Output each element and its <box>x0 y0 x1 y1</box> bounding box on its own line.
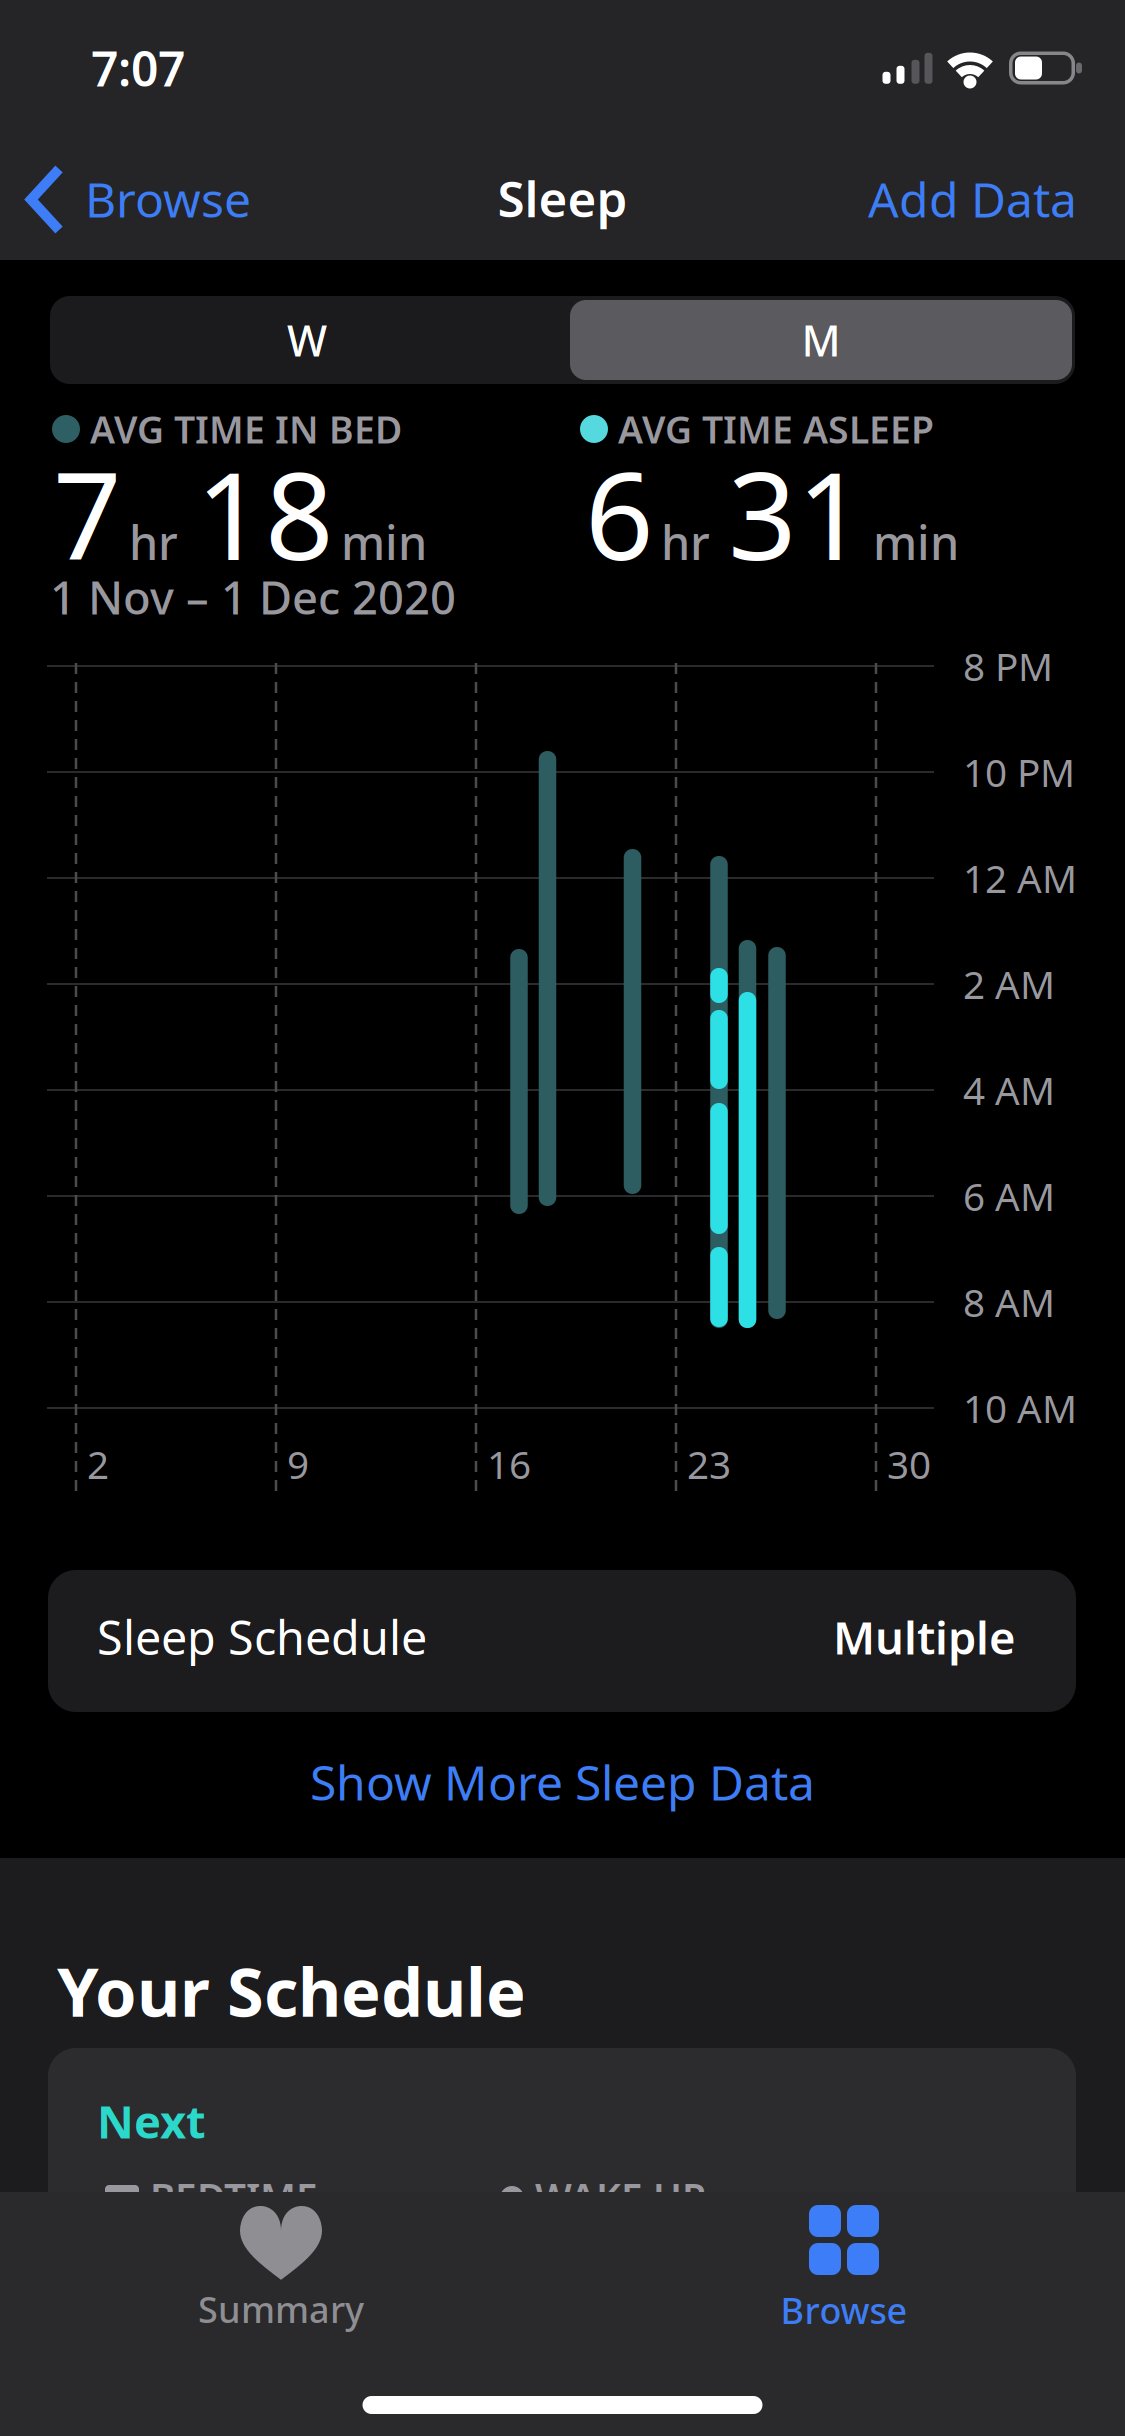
staticText: 4 AM <box>963 1064 1055 1116</box>
staticText: Show More Sleep Data <box>310 1750 815 1814</box>
staticText: hr <box>129 511 178 573</box>
staticText: Next <box>97 2091 206 2151</box>
button[interactable]: Show More Sleep Data <box>112 1727 1012 1837</box>
button[interactable]: M <box>562 296 1074 384</box>
staticText: AVG TIME IN BED <box>90 404 402 454</box>
staticText: 7 <box>53 434 122 593</box>
staticText: 12 AM <box>963 852 1077 904</box>
staticText: 30 <box>887 1438 931 1490</box>
staticText: 2 <box>87 1438 109 1490</box>
staticText: AVG TIME ASLEEP <box>618 404 934 454</box>
staticText: 23 <box>687 1438 731 1490</box>
staticText: Your Schedule <box>57 1947 526 2035</box>
staticText: 8 AM <box>963 1276 1055 1328</box>
staticText: 10 AM <box>963 1382 1077 1434</box>
staticText: Multiple <box>833 1607 1016 1667</box>
button[interactable]: Summary <box>0 2192 562 2436</box>
button[interactable]: Add Data <box>787 144 1077 254</box>
staticText: 31 <box>728 434 866 593</box>
staticText: BEDTIME <box>150 2170 318 2222</box>
staticText: 8 PM <box>963 640 1053 692</box>
staticText: Sleep <box>497 165 627 231</box>
staticText: 10 PM <box>963 746 1075 798</box>
button[interactable]: Browse <box>563 2192 1125 2436</box>
staticText: hr <box>661 511 710 573</box>
button[interactable]: Next <box>48 2048 1076 2436</box>
staticText: Browse <box>780 2286 907 2334</box>
staticText: 2 AM <box>963 958 1055 1010</box>
staticText: 1 Nov – 1 Dec 2020 <box>50 567 456 627</box>
staticText: 6 <box>585 434 654 593</box>
staticText: M <box>801 312 840 368</box>
staticText: Summary <box>198 2285 364 2333</box>
staticText: Browse <box>85 167 251 231</box>
staticText: WAKE UP <box>535 2170 706 2222</box>
staticText: 16 <box>487 1438 531 1490</box>
button[interactable]: W <box>51 296 563 384</box>
staticText: 7:07 <box>91 36 185 100</box>
staticText: W <box>287 312 327 368</box>
staticText: Sleep Schedule <box>97 1606 427 1668</box>
staticText: 6 AM <box>963 1170 1055 1222</box>
staticText: Add Data <box>868 167 1077 231</box>
staticText: 18 <box>196 434 334 593</box>
button[interactable]: Sleep Schedule <box>48 1570 1076 1712</box>
button[interactable]: Browse <box>25 144 275 254</box>
staticText: min <box>873 511 959 573</box>
staticText: min <box>341 511 427 573</box>
staticText: 9 <box>287 1438 309 1490</box>
